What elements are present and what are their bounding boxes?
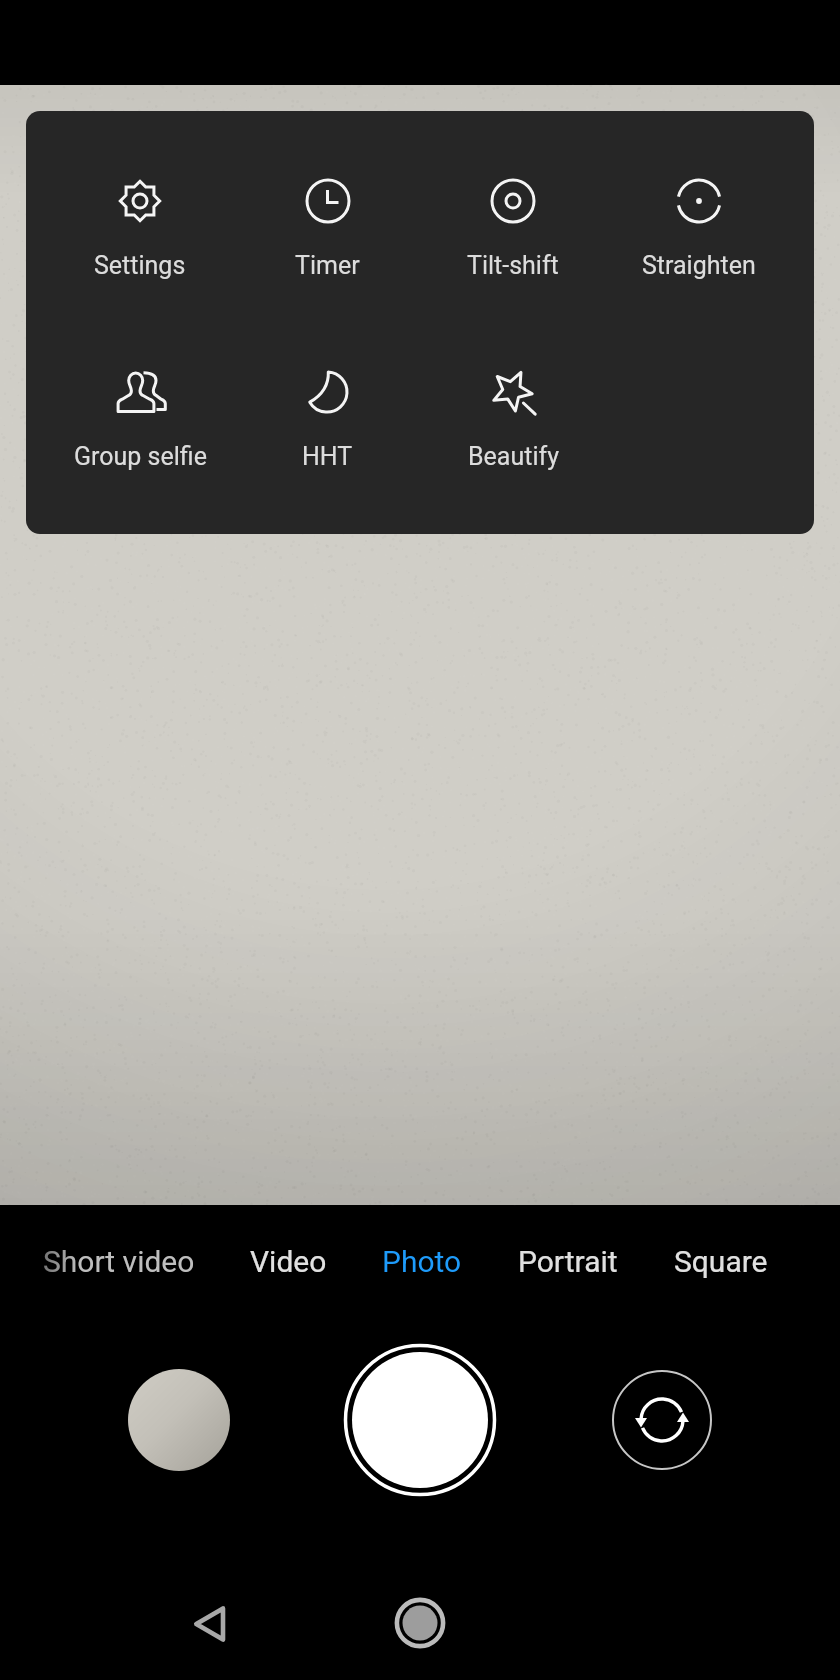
button[interactable]: HHT <box>234 356 420 472</box>
button[interactable]: Timer <box>234 165 420 281</box>
button[interactable]: Switch camera <box>612 1370 712 1470</box>
button[interactable]: Back <box>175 1588 245 1658</box>
staticText: Timer <box>295 251 360 280</box>
staticText: Portrait <box>518 1244 618 1279</box>
button[interactable]: Group selfie <box>47 356 233 472</box>
staticText: Square <box>674 1244 768 1279</box>
staticText: Video <box>250 1244 327 1279</box>
button[interactable]: Gallery <box>128 1369 230 1471</box>
staticText: HHT <box>302 442 353 471</box>
button[interactable]: Tilt-shift <box>420 165 606 281</box>
staticText: Group selfie <box>74 442 207 471</box>
button[interactable]: Home <box>385 1588 455 1658</box>
button[interactable]: Beautify <box>420 356 606 472</box>
button[interactable]: Take photo <box>343 1343 497 1497</box>
button[interactable]: Settings <box>47 165 233 281</box>
staticText: Beautify <box>468 442 559 471</box>
staticText: Tilt-shift <box>467 251 559 280</box>
staticText: Short video <box>43 1244 195 1279</box>
button[interactable]: Photo <box>368 1229 476 1293</box>
button[interactable]: Video <box>236 1229 341 1293</box>
staticText: Straighten <box>642 251 756 280</box>
button[interactable]: Straighten <box>606 165 792 281</box>
button[interactable]: Short video <box>29 1229 209 1293</box>
button[interactable]: Portrait <box>504 1229 632 1293</box>
staticText: Photo <box>382 1244 462 1279</box>
staticText: Settings <box>94 251 186 280</box>
button[interactable]: Square <box>660 1229 782 1293</box>
